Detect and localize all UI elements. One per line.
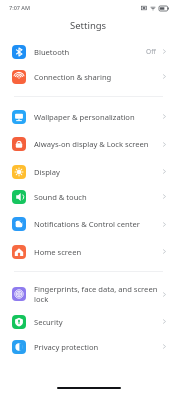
staticText: Security [34,317,63,327]
button[interactable]: Connection & sharing [0,64,177,89]
button[interactable]: Notifications & Control center [0,209,177,239]
staticText: 7:07 AM [9,4,31,11]
staticText: Sound & touch [34,192,87,202]
staticText: Wallpaper & personalization [34,112,135,122]
staticText: Settings [70,19,107,32]
button[interactable]: Sound & touch [0,184,177,209]
button[interactable]: Security [0,309,177,334]
button[interactable]: Privacy protection [0,334,177,359]
button[interactable]: Wallpaper & personalization [0,104,177,129]
staticText: Bluetooth [34,47,70,57]
staticText: Display [34,167,60,177]
staticText: Home screen [34,247,82,257]
staticText: Notifications & Control center [34,219,140,229]
staticText: Privacy protection [34,342,99,352]
staticText: Fingerprints, face data, and screen lock [34,284,161,304]
button[interactable]: Display [0,159,177,184]
button[interactable]: Home screen [0,239,177,264]
staticText: Connection & sharing [34,72,112,82]
button[interactable]: Fingerprints, face data, and screen lock [0,279,177,309]
staticText: Off [146,47,156,56]
button[interactable]: Bluetooth [0,39,177,64]
button[interactable]: Always-on display & Lock screen [0,129,177,159]
staticText: Always-on display & Lock screen [34,139,149,149]
